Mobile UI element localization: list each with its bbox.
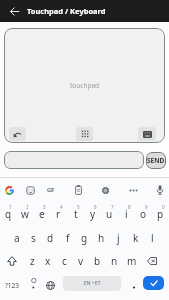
button[interactable]: w: [16, 202, 33, 226]
button[interactable]: u: [101, 202, 118, 226]
button[interactable]: n: [106, 249, 123, 273]
button[interactable]: [4, 151, 144, 169]
button[interactable]: p: [152, 202, 169, 226]
button[interactable]: [124, 181, 142, 199]
staticText: a: [14, 231, 20, 245]
button[interactable]: [140, 249, 164, 273]
staticText: 3: [43, 204, 46, 210]
button[interactable]: q: [0, 202, 16, 226]
staticText: r: [56, 207, 61, 221]
staticText: x: [45, 254, 51, 268]
button[interactable]: k: [127, 226, 144, 250]
staticText: SEND: [147, 156, 165, 165]
staticText: n: [111, 254, 118, 268]
staticText: b: [94, 254, 101, 268]
button[interactable]: [5, 2, 23, 20]
staticText: 4: [60, 204, 63, 210]
staticText: 0: [162, 204, 165, 210]
button[interactable]: [126, 273, 143, 297]
button[interactable]: g: [76, 226, 93, 250]
button[interactable]: y: [84, 202, 101, 226]
button[interactable]: i: [118, 202, 135, 226]
button[interactable]: j: [110, 226, 127, 250]
button[interactable]: [0, 181, 18, 199]
button[interactable]: [9, 127, 26, 141]
staticText: 2: [26, 204, 29, 210]
button[interactable]: touchpad: [4, 28, 165, 143]
staticText: e: [39, 207, 45, 221]
staticText: Touchpad / Keyboard: [27, 6, 106, 16]
button[interactable]: m: [123, 249, 140, 273]
button[interactable]: z: [24, 249, 40, 273]
staticText: m: [127, 254, 137, 268]
button[interactable]: [0, 249, 24, 273]
button[interactable]: [69, 181, 87, 199]
staticText: h: [98, 231, 105, 245]
staticText: 1: [9, 204, 12, 210]
button[interactable]: v: [72, 249, 89, 273]
staticText: i: [125, 207, 128, 221]
button[interactable]: f: [59, 226, 76, 250]
button[interactable]: t: [67, 202, 84, 226]
staticText: 7: [111, 204, 114, 210]
button[interactable]: [138, 127, 156, 141]
staticText: c: [62, 254, 67, 268]
button[interactable]: [76, 127, 93, 141]
button[interactable]: c: [56, 249, 72, 273]
staticText: f: [66, 231, 70, 245]
staticText: 5: [77, 204, 80, 210]
button[interactable]: [25, 273, 42, 297]
staticText: z: [30, 254, 35, 268]
staticText: t: [74, 207, 78, 221]
button[interactable]: [96, 181, 114, 199]
staticText: GIF: [47, 187, 55, 193]
button[interactable]: [151, 181, 169, 199]
staticText: g: [81, 231, 88, 245]
staticText: 9: [145, 204, 148, 210]
staticText: d: [47, 231, 54, 245]
staticText: 6: [94, 204, 97, 210]
staticText: q: [5, 207, 12, 221]
staticText: touchpad: [70, 81, 100, 90]
staticText: o: [140, 207, 147, 221]
staticText: p: [157, 207, 164, 221]
button[interactable]: a: [8, 226, 25, 250]
button[interactable]: [21, 181, 39, 199]
staticText: 8: [128, 204, 131, 210]
button[interactable]: o: [135, 202, 152, 226]
button[interactable]: d: [42, 226, 59, 250]
staticText: w: [21, 207, 29, 221]
staticText: s: [31, 231, 36, 245]
staticText: u: [106, 207, 113, 221]
button[interactable]: EN • ET: [63, 276, 121, 291]
button[interactable]: r: [50, 202, 67, 226]
button[interactable]: s: [25, 226, 42, 250]
staticText: EN • ET: [84, 280, 101, 287]
button[interactable]: x: [40, 249, 56, 273]
button[interactable]: ?123: [0, 273, 23, 297]
button[interactable]: h: [93, 226, 110, 250]
staticText: v: [78, 254, 84, 268]
button[interactable]: SEND: [146, 152, 166, 169]
button[interactable]: [42, 273, 59, 297]
staticText: j: [117, 231, 120, 245]
staticText: l: [151, 231, 154, 245]
staticText: k: [133, 231, 139, 245]
staticText: y: [90, 207, 96, 221]
button[interactable]: b: [89, 249, 106, 273]
staticText: ?123: [5, 281, 19, 290]
button[interactable]: [143, 276, 164, 290]
button[interactable]: l: [144, 226, 161, 250]
button[interactable]: e: [33, 202, 50, 226]
